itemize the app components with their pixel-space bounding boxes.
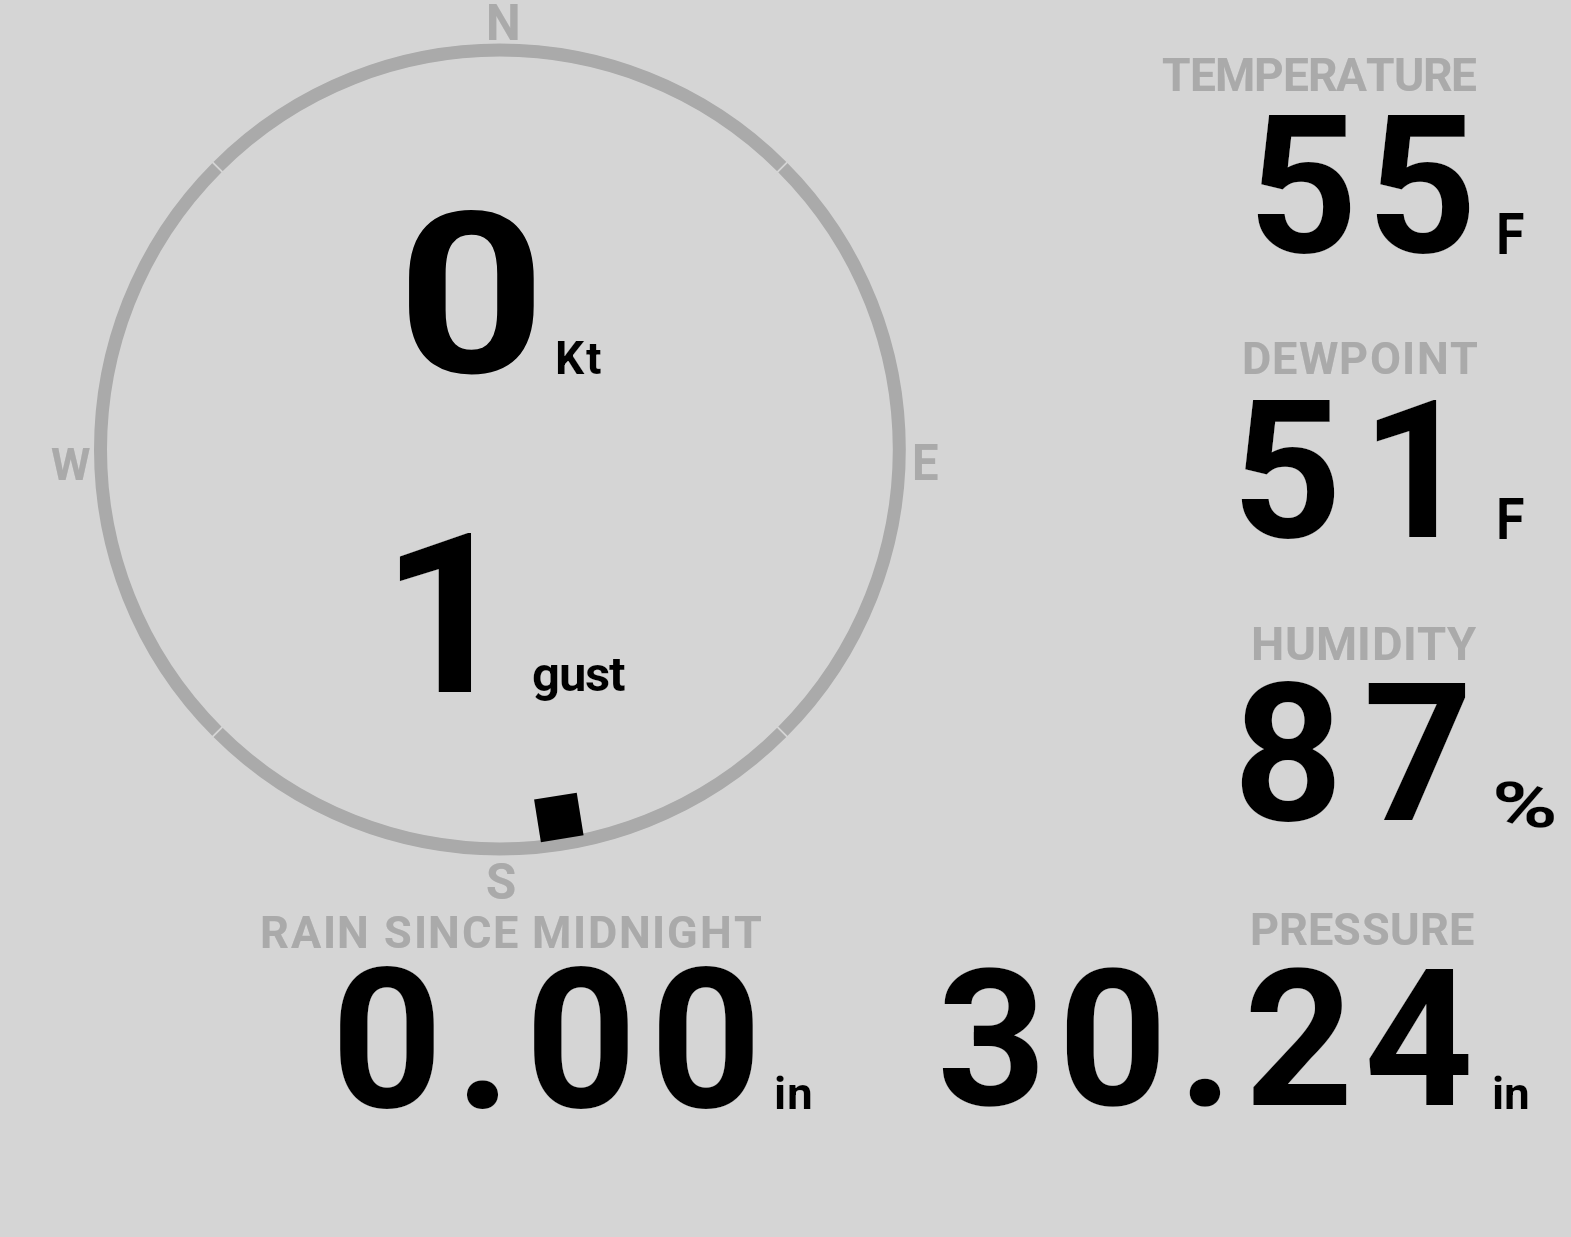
button[interactable]: Dewpoint 51 degrees F — [1140, 325, 1571, 565]
button[interactable]: Temperature 55 degrees F — [1140, 40, 1571, 280]
button[interactable]: Humidity 87 percent — [1140, 610, 1571, 850]
button[interactable]: Rain since midnight 0.00 inches — [240, 895, 840, 1130]
button[interactable]: Wind 0 knots, gust 1, from the south — [40, 0, 960, 905]
button[interactable]: Pressure 30.24 inches — [890, 895, 1550, 1130]
